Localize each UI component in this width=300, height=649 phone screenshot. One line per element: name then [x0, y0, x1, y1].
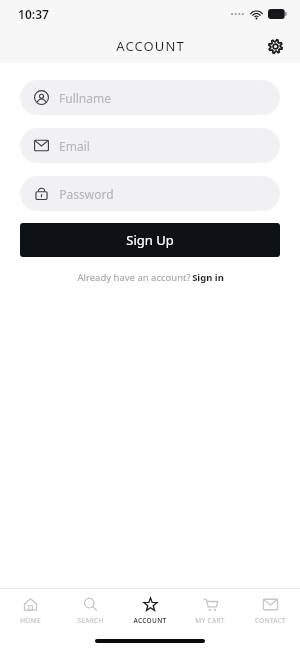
button[interactable]: Settings — [261, 32, 289, 60]
staticText: Password — [59, 186, 114, 202]
button[interactable]: Password — [20, 176, 280, 211]
staticText: ACCOUNT — [133, 616, 167, 625]
staticText: HOME — [20, 616, 41, 625]
button[interactable]: Sign Up — [20, 223, 280, 257]
staticText: Sign in — [192, 271, 224, 284]
button[interactable]: HOME — [0, 589, 60, 633]
staticText: SEARCH — [77, 616, 104, 625]
button[interactable]: Email — [20, 128, 280, 163]
staticText: Sign Up — [126, 231, 174, 249]
staticText: MY CART — [195, 616, 225, 625]
staticText: Fullname — [59, 90, 111, 106]
button[interactable]: ACCOUNT — [120, 589, 180, 633]
staticText: Already have an account? — [76, 271, 192, 284]
button[interactable]: SEARCH — [60, 589, 120, 633]
button[interactable]: MY CART — [180, 589, 240, 633]
button[interactable]: CONTACT — [240, 589, 300, 633]
staticText: ACCOUNT — [116, 37, 185, 55]
staticText: CONTACT — [255, 616, 286, 625]
staticText: 10:37 — [18, 6, 49, 22]
button[interactable]: Already have an account? — [0, 271, 300, 284]
staticText: Email — [59, 138, 90, 154]
button[interactable]: Fullname — [20, 80, 280, 115]
